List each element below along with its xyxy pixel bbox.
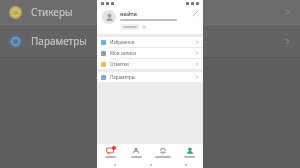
button[interactable]: Параметры	[97, 72, 203, 82]
button[interactable]: Контакты	[123, 144, 149, 161]
button[interactable]: Избранное	[97, 37, 203, 47]
staticText: Мои записи	[110, 50, 136, 56]
button[interactable]: Info	[142, 25, 146, 29]
button[interactable]: Recents	[168, 161, 203, 168]
button[interactable]: Чаты	[97, 144, 123, 161]
button[interactable]: Back	[97, 161, 133, 168]
button[interactable]: найти	[97, 6, 203, 34]
button[interactable]: Edit	[192, 10, 199, 17]
button[interactable]: Профиль	[176, 144, 203, 161]
staticText: Избранное	[110, 39, 135, 45]
button[interactable]: Параметры	[0, 25, 300, 57]
staticText: Отметки	[110, 61, 129, 67]
staticText: Параметры	[110, 74, 136, 80]
button[interactable]: Уведомления	[149, 144, 176, 161]
button[interactable]: Мои записи	[97, 48, 203, 58]
button[interactable]	[120, 24, 140, 30]
staticText: Стикеры	[31, 5, 73, 19]
button[interactable]: Стикеры	[0, 0, 300, 24]
staticText: Параметры	[31, 34, 87, 48]
button[interactable]: Отметки	[97, 59, 203, 69]
button[interactable]: Home	[133, 161, 168, 168]
staticText: найти	[120, 10, 138, 17]
